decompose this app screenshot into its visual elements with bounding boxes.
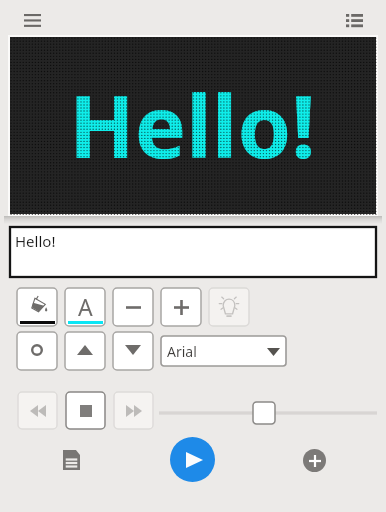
- button[interactable]: Saved messages: [336, 3, 372, 38]
- button[interactable]: Previous: [18, 392, 57, 429]
- button[interactable]: Flash: [209, 288, 249, 326]
- button[interactable]: Scroll speed: [253, 402, 275, 424]
- button[interactable]: Play: [170, 437, 215, 482]
- staticText: Hello!: [69, 66, 316, 183]
- button[interactable]: Stop: [66, 392, 105, 429]
- button[interactable]: Next: [114, 392, 153, 429]
- button[interactable]: Message text: [10, 227, 376, 277]
- staticText: A: [78, 291, 93, 322]
- button[interactable]: Add message: [303, 449, 326, 472]
- button[interactable]: Increase size: [161, 288, 201, 326]
- button[interactable]: Move up: [65, 332, 105, 370]
- button[interactable]: Shape: [17, 332, 57, 370]
- button[interactable]: Text colour: [65, 288, 105, 326]
- button[interactable]: Messages: [51, 440, 91, 480]
- button[interactable]: Menu: [14, 3, 50, 38]
- button[interactable]: Font: [161, 336, 286, 366]
- button[interactable]: Background colour: [17, 288, 57, 326]
- button[interactable]: Decrease size: [113, 288, 153, 326]
- button[interactable]: LED banner preview: [10, 37, 376, 214]
- staticText: Hello!: [15, 231, 56, 251]
- button[interactable]: Move down: [113, 332, 153, 370]
- staticText: Arial: [167, 342, 197, 361]
